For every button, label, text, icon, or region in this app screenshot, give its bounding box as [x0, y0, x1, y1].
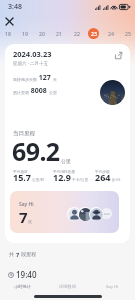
staticText: 3:48 [8, 2, 22, 12]
staticText: 共 [9, 251, 16, 258]
staticText: 15.7 [13, 171, 31, 183]
staticText: 23 [91, 30, 97, 37]
button[interactable]: 18 [2, 28, 13, 39]
staticText: 7 [19, 207, 28, 227]
staticText: 坚持跑步天数 [13, 77, 37, 82]
button[interactable]: Say Hi [90, 281, 135, 291]
staticText: 当日里程 [13, 130, 35, 137]
button[interactable]: 19 [19, 28, 30, 39]
staticText: 段里程 [20, 251, 37, 258]
staticText: 12.9 [53, 171, 71, 183]
staticText: 18 [5, 30, 11, 37]
staticText: 公里/时 [32, 177, 45, 182]
staticText: 8008 [29, 86, 49, 96]
staticText: 千卡/公里 [72, 177, 89, 182]
staticText: 21 [56, 30, 62, 37]
button[interactable]: 20 [36, 28, 47, 39]
staticText: Say Hi [19, 201, 34, 208]
staticText: 公里 [61, 158, 71, 164]
button[interactable]: Close [2, 14, 16, 28]
staticText: 127 [37, 73, 53, 83]
staticText: 详细数据 [59, 284, 77, 289]
staticText: 264 [95, 171, 111, 183]
staticText: Say Hi [106, 283, 119, 289]
button[interactable]: 小时统计 [0, 281, 45, 291]
button[interactable]: 19:40 [8, 269, 37, 280]
button[interactable]: 25 [122, 28, 133, 39]
staticText: 69.2 [12, 134, 60, 168]
staticText: 天 [53, 77, 57, 82]
staticText: 小时统计 [14, 284, 32, 289]
button[interactable]: 24 [105, 28, 116, 39]
staticText: 平均速度 [13, 169, 28, 174]
staticText: 19:40 [16, 269, 37, 280]
staticText: 2024.03.23 [13, 49, 52, 59]
staticText: 步/分 [112, 177, 121, 182]
staticText: 20 [39, 30, 45, 37]
button[interactable]: 21 [53, 28, 64, 39]
staticText: 19 [22, 30, 28, 37]
staticText: 25 [125, 30, 131, 37]
button[interactable]: 详细数据 [45, 281, 90, 291]
staticText: 平均步频 [95, 169, 110, 174]
staticText: 公里 [49, 90, 57, 95]
button[interactable]: Say Hi [10, 191, 119, 233]
staticText: 24 [108, 30, 114, 37]
button[interactable]: 23 [88, 28, 99, 39]
staticText: 累计里程 [13, 90, 29, 95]
staticText: 7 [16, 251, 20, 258]
staticText: 次 [28, 219, 32, 224]
staticText: 星期六 · 二月十五 [13, 60, 49, 66]
button[interactable]: 22 [71, 28, 82, 39]
button[interactable]: Profile photo [100, 80, 125, 105]
staticText: 平均消耗热量 [53, 169, 76, 174]
button[interactable]: Share [113, 50, 123, 60]
staticText: 22 [74, 30, 80, 37]
